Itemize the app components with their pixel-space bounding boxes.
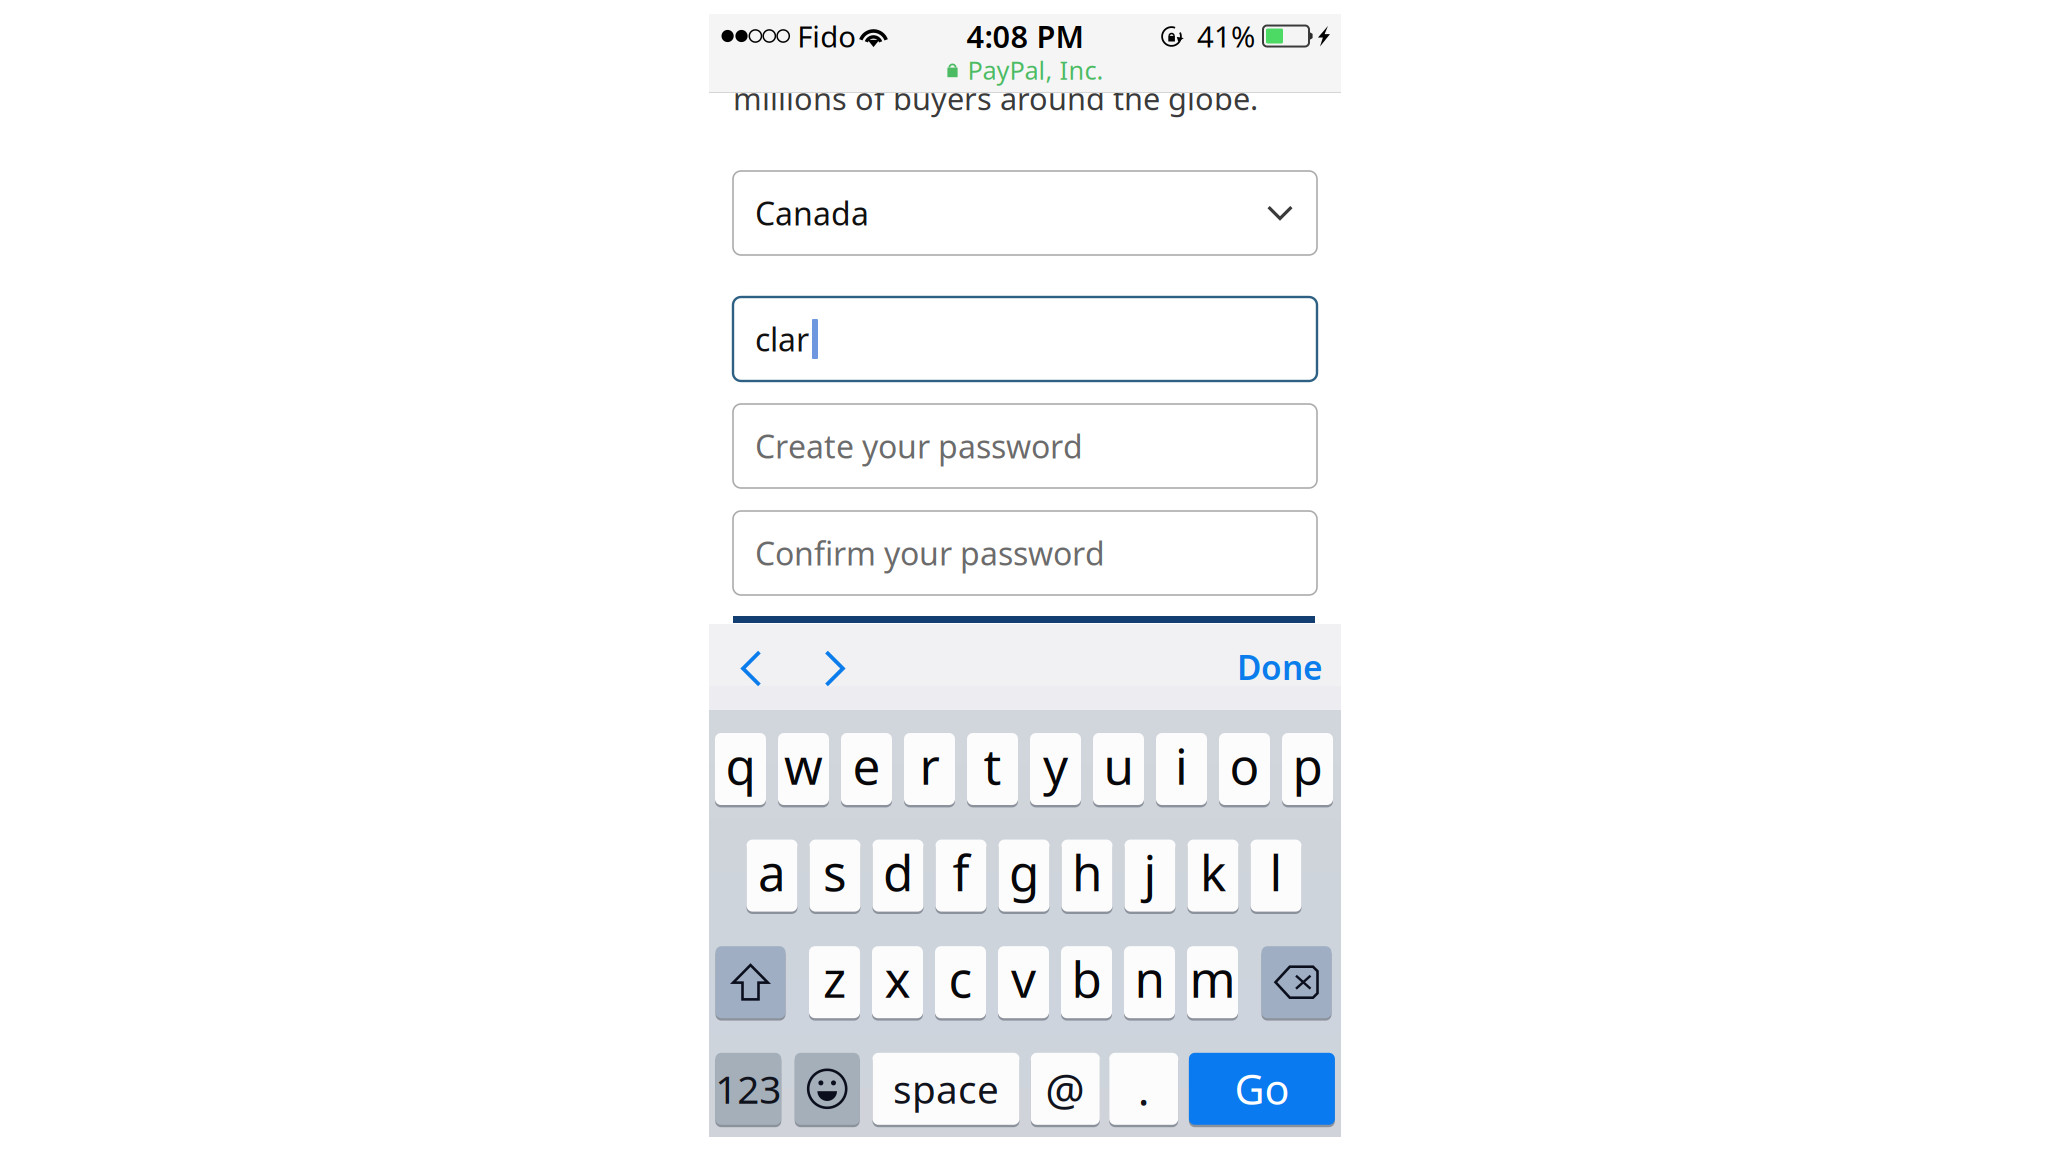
staticText: j: [1143, 839, 1156, 905]
button[interactable]: b: [1061, 946, 1112, 1021]
button[interactable]: Next field: [824, 624, 884, 710]
staticText: t: [983, 733, 1001, 798]
button[interactable]: c: [935, 946, 986, 1021]
button[interactable]: n: [1124, 946, 1175, 1021]
staticText: d: [883, 839, 913, 905]
button[interactable]: z: [809, 946, 860, 1021]
button[interactable]: a: [746, 840, 797, 914]
button[interactable]: Go: [1189, 1053, 1335, 1127]
button[interactable]: clar: [733, 297, 1317, 381]
button[interactable]: @: [1031, 1053, 1100, 1127]
button[interactable]: Previous field: [741, 624, 824, 710]
button[interactable]: t: [967, 733, 1018, 807]
staticText: q: [725, 733, 755, 798]
button[interactable]: s: [809, 840, 860, 914]
staticText: .: [1138, 1060, 1150, 1118]
button[interactable]: l: [1250, 840, 1301, 914]
staticText: o: [1229, 733, 1259, 798]
staticText: f: [952, 839, 969, 905]
staticText: n: [1134, 946, 1164, 1011]
button[interactable]: e: [841, 733, 892, 807]
button[interactable]: m: [1187, 946, 1238, 1021]
staticText: p: [1292, 733, 1322, 798]
staticText: Go: [1234, 1061, 1289, 1116]
button[interactable]: g: [998, 840, 1049, 914]
staticText: Canada: [755, 192, 869, 234]
button[interactable]: [1261, 946, 1331, 1021]
staticText: space: [893, 1063, 999, 1114]
staticText: y: [1043, 733, 1068, 798]
button[interactable]: Create your password: [733, 404, 1317, 488]
staticText: 123: [715, 1063, 781, 1114]
staticText: u: [1103, 733, 1133, 798]
button[interactable]: space: [872, 1053, 1019, 1127]
staticText: l: [1269, 839, 1282, 905]
staticText: millions of buyers around the globe.: [733, 78, 1258, 119]
button[interactable]: r: [904, 733, 955, 807]
staticText: clar: [755, 318, 809, 360]
staticText: w: [784, 733, 823, 798]
button[interactable]: [795, 1053, 860, 1127]
button[interactable]: p: [1282, 733, 1333, 807]
button[interactable]: 123: [715, 1053, 781, 1127]
button[interactable]: u: [1093, 733, 1144, 807]
staticText: Create your password: [755, 425, 1083, 467]
button[interactable]: i: [1156, 733, 1207, 807]
staticText: k: [1200, 839, 1226, 905]
staticText: z: [823, 946, 846, 1011]
staticText: Fido: [797, 16, 856, 55]
button[interactable]: j: [1124, 840, 1175, 914]
button[interactable]: Confirm your password: [733, 511, 1317, 595]
staticText: c: [948, 946, 972, 1011]
button[interactable]: Canada: [733, 171, 1317, 255]
staticText: r: [919, 733, 939, 798]
staticText: a: [758, 839, 786, 905]
staticText: v: [1011, 946, 1036, 1011]
button[interactable]: [715, 946, 785, 1021]
button[interactable]: Done: [1219, 624, 1323, 710]
staticText: Done: [1237, 645, 1323, 689]
staticText: b: [1071, 946, 1101, 1011]
staticText: @: [1045, 1060, 1085, 1118]
staticText: i: [1175, 733, 1188, 798]
staticText: x: [884, 946, 910, 1011]
button[interactable]: x: [872, 946, 923, 1021]
staticText: 4:08 PM: [966, 16, 1083, 56]
button[interactable]: d: [872, 840, 923, 914]
button[interactable]: h: [1061, 840, 1112, 914]
button[interactable]: v: [998, 946, 1049, 1021]
staticText: m: [1189, 946, 1235, 1011]
staticText: h: [1072, 839, 1102, 905]
button[interactable]: .: [1109, 1053, 1178, 1127]
staticText: 41%: [1197, 16, 1255, 55]
button[interactable]: w: [778, 733, 829, 807]
button[interactable]: k: [1187, 840, 1238, 914]
staticText: s: [823, 839, 847, 905]
staticText: Confirm your password: [755, 532, 1105, 574]
button[interactable]: f: [935, 840, 986, 914]
staticText: PayPal, Inc.: [967, 53, 1103, 87]
staticText: g: [1009, 839, 1039, 905]
button[interactable]: o: [1219, 733, 1270, 807]
staticText: PayPal: [751, 617, 821, 645]
button[interactable]: y: [1030, 733, 1081, 807]
button[interactable]: q: [715, 733, 766, 807]
staticText: e: [852, 733, 880, 798]
